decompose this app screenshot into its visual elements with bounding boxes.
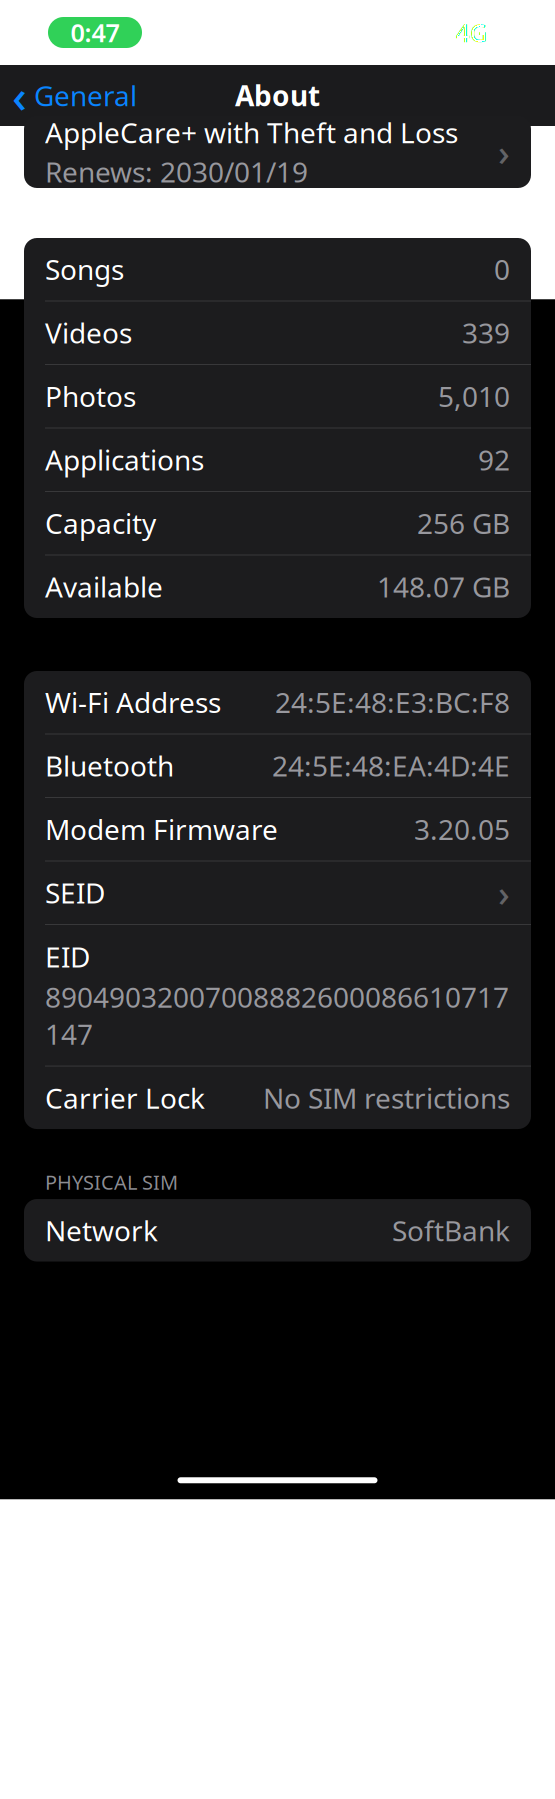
staticText: No SIM restrictions — [263, 1079, 510, 1116]
staticText: 339 — [462, 314, 510, 351]
staticText: 0:47 — [70, 16, 119, 49]
staticText: › — [498, 869, 510, 917]
button[interactable]: ‹ — [0, 67, 145, 123]
button[interactable]: SEID — [24, 861, 531, 924]
staticText: 92 — [478, 441, 510, 478]
staticText: › — [498, 128, 510, 176]
staticText: 3.20.05 — [414, 811, 510, 848]
staticText: About — [235, 77, 320, 114]
staticText: General — [34, 77, 137, 114]
staticText: ‹ — [12, 65, 27, 126]
staticText: SEID — [45, 874, 105, 911]
staticText: Applications — [45, 441, 204, 478]
staticText: Network — [45, 1212, 158, 1249]
staticText: 0 — [494, 251, 510, 288]
staticText: 89049032007008882600086610717147 — [45, 978, 509, 1053]
staticText: EID — [45, 938, 90, 975]
staticText: Available — [45, 568, 163, 605]
staticText: 148.07 GB — [377, 568, 510, 605]
staticText: Carrier Lock — [45, 1079, 205, 1116]
staticText: Wi-Fi Address — [45, 684, 221, 721]
staticText: 24:5E:48:EA:4D:4E — [272, 747, 510, 784]
staticText: Modem Firmware — [45, 811, 278, 848]
staticText: 5,010 — [438, 378, 510, 415]
staticText: 24:5E:48:E3:BC:F8 — [275, 684, 510, 721]
button[interactable]: AppleCare+ with Theft and Loss — [24, 116, 531, 188]
staticText: Videos — [45, 314, 132, 351]
staticText: 256 GB — [417, 505, 510, 542]
staticText: Renews: 2030/01/19 — [45, 153, 308, 190]
staticText: 4G — [455, 16, 487, 49]
staticText: Photos — [45, 378, 136, 415]
staticText: Capacity — [45, 505, 156, 542]
staticText: AppleCare+ with Theft and Loss — [45, 114, 458, 151]
staticText: SoftBank — [392, 1212, 510, 1249]
staticText: PHYSICAL SIM — [45, 1169, 178, 1195]
staticText: Bluetooth — [45, 747, 174, 784]
staticText: Songs — [45, 251, 124, 288]
